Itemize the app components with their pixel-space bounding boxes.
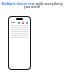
staticText: Multiple choice test with everything you… (1, 1, 63, 9)
